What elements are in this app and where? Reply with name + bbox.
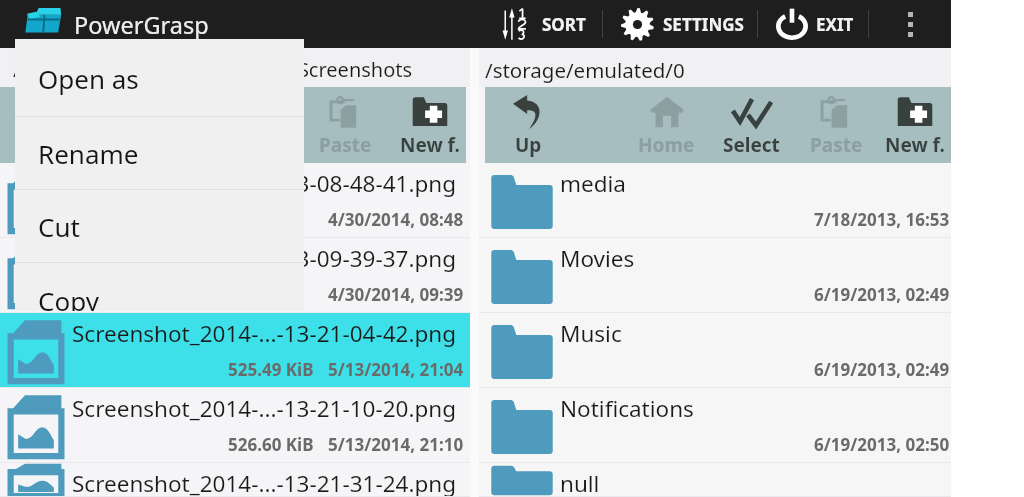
staticText: New f. — [885, 132, 945, 158]
button[interactable]: Screenshot_2014-...-13-21-31-24.png — [0, 463, 470, 497]
staticText: Movies — [560, 243, 635, 274]
staticText: 525.49 KiB — [228, 358, 314, 381]
button[interactable]: Settings — [603, 0, 757, 48]
button[interactable]: Up — [485, 87, 571, 163]
button[interactable]: Sort — [482, 0, 602, 48]
staticText: 6/19/2013, 02:49 — [814, 358, 950, 381]
staticText: SORT — [542, 13, 586, 36]
staticText: Rename — [38, 136, 139, 171]
staticText: Paste — [319, 132, 372, 158]
button[interactable]: media — [479, 163, 951, 238]
button[interactable]: PowerGrasp — [0, 0, 225, 48]
button[interactable]: Select — [708, 87, 794, 163]
button[interactable]: Paste — [793, 87, 879, 163]
staticText: null — [560, 468, 600, 497]
staticText: 7/18/2013, 16:53 — [814, 208, 950, 231]
staticText: Open as — [38, 61, 139, 96]
button[interactable]: Copy — [15, 263, 304, 311]
button[interactable]: Home — [623, 87, 709, 163]
button[interactable]: Notifications — [479, 388, 951, 463]
button[interactable]: null — [479, 463, 951, 497]
staticText: 4/30/2014, 08:48 — [328, 208, 464, 231]
button[interactable]: Screenshot_2014-...-13-21-04-42.png — [0, 313, 470, 388]
staticText: 6/19/2013, 02:49 — [814, 283, 950, 306]
button[interactable]: Movies — [479, 238, 951, 313]
staticText: Screenshot_2014-...-13-21-04-42.png — [72, 318, 457, 349]
button[interactable]: Music — [479, 313, 951, 388]
staticText: PowerGrasp — [74, 9, 209, 41]
button[interactable]: Cut — [15, 190, 304, 263]
staticText: media — [560, 168, 626, 199]
staticText: Screenshot_2014-...-13-21-10-20.png — [72, 393, 457, 424]
staticText: New f. — [400, 132, 460, 158]
button[interactable]: Exit — [758, 0, 868, 48]
staticText: 5/13/2014, 21:04 — [328, 358, 464, 381]
staticText: /storage/emulated/0/Pictures/Screenshots — [13, 56, 413, 83]
button[interactable]: Screenshot_2014-...-13-09-39-37.png — [0, 238, 470, 313]
staticText: Paste — [810, 132, 863, 158]
staticText: Music — [560, 318, 622, 349]
button[interactable]: Paste — [302, 87, 388, 163]
staticText: 6/19/2013, 02:50 — [814, 433, 950, 456]
staticText: Copy — [38, 283, 99, 311]
button[interactable]: /storage/emulated/0/Pictures/Screenshots — [0, 48, 470, 87]
button[interactable]: /storage/emulated/0 — [479, 48, 951, 87]
staticText: SETTINGS — [663, 13, 744, 36]
other: Settings — [621, 8, 654, 41]
staticText: Screenshot_2014-...-13-09-39-37.png — [72, 243, 457, 274]
staticText: Home — [638, 132, 695, 158]
button[interactable]: New f. — [387, 87, 473, 163]
staticText: Cut — [38, 209, 80, 244]
staticText: Notifications — [560, 393, 694, 424]
staticText: EXIT — [816, 13, 854, 36]
button[interactable]: Screenshot_2014-...-13-21-10-20.png — [0, 388, 470, 463]
staticText: 4/30/2014, 09:39 — [328, 283, 464, 306]
staticText: Screenshot_2014-...-13-21-31-24.png — [72, 468, 457, 497]
staticText: Select — [723, 132, 780, 158]
button[interactable]: More options — [869, 0, 951, 48]
staticText: 5/13/2014, 21:10 — [328, 433, 464, 456]
button[interactable]: Open as — [15, 39, 304, 117]
button[interactable]: Screenshot_2014-...-13-08-48-41.png — [0, 163, 470, 238]
staticText: Up — [515, 132, 542, 158]
button[interactable]: Rename — [15, 117, 304, 190]
button[interactable]: New f. — [872, 87, 958, 163]
staticText: Screenshot_2014-...-13-08-48-41.png — [72, 168, 457, 199]
staticText: /storage/emulated/0 — [485, 56, 685, 84]
other: Sort — [502, 8, 538, 40]
other: Exit — [776, 8, 808, 40]
staticText: 526.60 KiB — [228, 433, 314, 456]
